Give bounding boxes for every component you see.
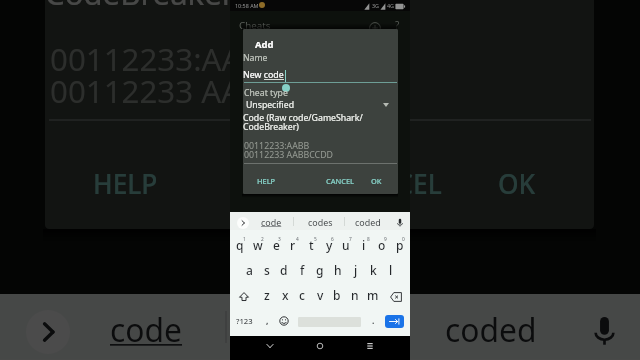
button[interactable]: Expand suggestions	[237, 217, 249, 229]
staticText: 00112233:AABB	[244, 140, 310, 152]
staticText: 10:58 AM	[235, 2, 259, 9]
button[interactable]: k	[364, 261, 382, 279]
button[interactable]: Recent apps	[362, 339, 378, 353]
button[interactable]: Help	[392, 18, 403, 32]
staticText: p	[396, 237, 404, 253]
button[interactable]: y	[320, 236, 338, 254]
button[interactable]: q	[231, 236, 249, 254]
staticText: k	[370, 262, 377, 278]
button[interactable]: code	[258, 215, 284, 228]
button[interactable]: ?123	[234, 314, 254, 328]
staticText: 3G	[372, 2, 380, 9]
button[interactable]: CANCEL	[333, 159, 450, 209]
button[interactable]: n	[346, 286, 364, 304]
button[interactable]: codes	[265, 306, 372, 352]
staticText: 1	[243, 236, 246, 243]
button[interactable]: Voice input	[394, 217, 406, 228]
button[interactable]: v	[311, 286, 329, 304]
button[interactable]: CANCEL	[324, 174, 357, 188]
button[interactable]: Enter	[385, 315, 404, 328]
button[interactable]: l	[382, 261, 400, 279]
staticText: d	[280, 262, 288, 278]
staticText: OK	[371, 176, 382, 186]
button[interactable]: o	[373, 236, 391, 254]
staticText: Add	[255, 38, 274, 51]
staticText: ,	[266, 315, 269, 327]
button[interactable]: HELP	[252, 174, 280, 188]
staticText: CodeBreaker)	[45, 0, 244, 14]
button[interactable]: code	[100, 306, 192, 352]
staticText: 4	[296, 236, 299, 243]
staticText: m	[367, 287, 379, 303]
button[interactable]: Shift	[238, 291, 250, 303]
button[interactable]: Expand suggestions	[26, 310, 70, 354]
button[interactable]: b	[328, 286, 346, 304]
button[interactable]: a	[240, 261, 258, 279]
staticText: h	[334, 262, 342, 278]
staticText: CANCEL	[326, 176, 355, 186]
staticText: j	[354, 262, 358, 278]
button[interactable]: f	[293, 261, 311, 279]
staticText: coded	[355, 216, 381, 228]
staticText: code	[110, 308, 183, 351]
staticText: Cheat type	[244, 87, 288, 99]
button[interactable]: coded	[353, 215, 383, 228]
button[interactable]: u	[337, 236, 355, 254]
staticText: z	[264, 287, 270, 303]
staticText: Name	[243, 52, 268, 64]
button[interactable]: HELP	[75, 159, 175, 209]
button[interactable]: codes	[305, 215, 335, 228]
button[interactable]: ,	[262, 314, 272, 328]
button[interactable]: m	[364, 286, 382, 304]
staticText: 6	[331, 236, 334, 243]
staticText: 4G	[387, 2, 395, 9]
staticText: s	[264, 262, 270, 278]
button[interactable]: Back	[262, 339, 278, 353]
button[interactable]: Voice input	[583, 311, 626, 350]
button[interactable]: t	[302, 236, 320, 254]
button[interactable]: Add cheat	[368, 21, 382, 35]
button[interactable]: h	[329, 261, 347, 279]
button[interactable]: x	[276, 286, 294, 304]
button[interactable]: .	[368, 314, 378, 328]
button[interactable]: p	[391, 236, 409, 254]
staticText: Code (Raw code/GameShark/	[243, 112, 363, 124]
staticText: 7	[349, 236, 352, 243]
button[interactable]: r	[284, 236, 302, 254]
button[interactable]: z	[258, 286, 276, 304]
staticText: CANCEL	[342, 166, 442, 202]
button[interactable]: s	[258, 261, 276, 279]
button[interactable]: e	[267, 236, 285, 254]
staticText: OK	[498, 166, 536, 202]
button[interactable]: c	[293, 286, 311, 304]
staticText: 3	[278, 236, 281, 243]
staticText: t	[309, 237, 314, 253]
staticText: codes	[275, 308, 363, 351]
staticText: .	[372, 315, 375, 327]
staticText: q	[236, 237, 244, 253]
staticText: HELP	[257, 176, 276, 186]
button[interactable]: Backspace	[390, 291, 402, 303]
staticText: b	[333, 287, 341, 303]
button[interactable]: w	[249, 236, 267, 254]
button[interactable]: Home	[312, 339, 328, 353]
staticText: g	[316, 262, 324, 278]
staticText: 2	[261, 236, 264, 243]
button[interactable]: Emoji	[278, 315, 290, 327]
staticText: ?	[395, 18, 400, 32]
staticText: 9	[384, 236, 387, 243]
button[interactable]: g	[311, 261, 329, 279]
button[interactable]: coded	[437, 306, 544, 352]
staticText: 00112233 AABBCCDD	[50, 70, 367, 113]
staticText: ?123	[236, 316, 253, 326]
staticText: coded	[445, 308, 537, 351]
button[interactable]: i	[355, 236, 373, 254]
staticText: w	[253, 237, 263, 253]
button[interactable]: j	[347, 261, 365, 279]
staticText: CodeBreaker)	[243, 121, 299, 133]
button[interactable]: OK	[481, 159, 552, 209]
button[interactable]: d	[275, 261, 293, 279]
button[interactable]: OK	[366, 174, 386, 188]
staticText: r	[290, 237, 296, 253]
